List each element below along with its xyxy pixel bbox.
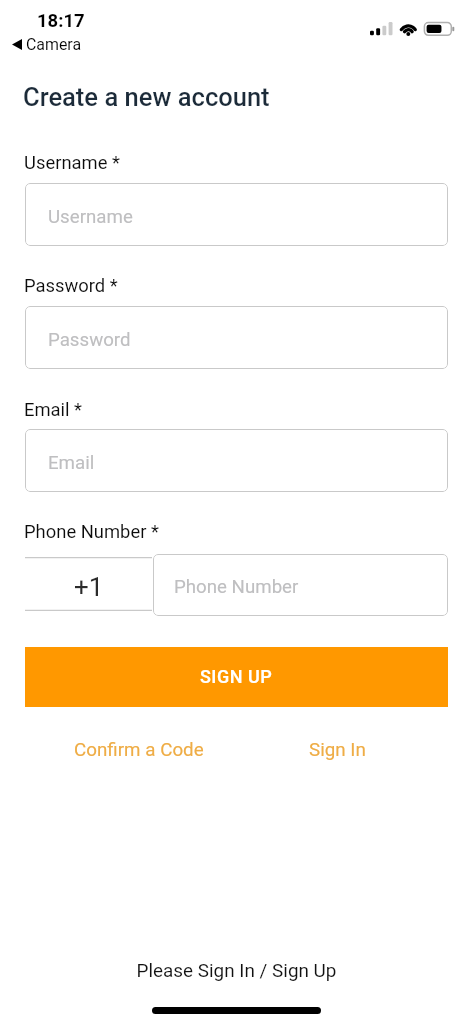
button[interactable]: Confirm a Code (56, 736, 222, 764)
other: Wi-Fi (398, 21, 419, 36)
other: Battery (423, 21, 457, 38)
button[interactable]: Email (25, 429, 448, 492)
staticText: Username (48, 206, 133, 228)
staticText: Phone Number (174, 576, 299, 598)
staticText: Email (48, 452, 95, 474)
staticText: Email * (24, 399, 83, 421)
staticText: +1 (74, 572, 104, 602)
button[interactable]: Sign In (280, 736, 394, 764)
button[interactable]: Back to Camera (12, 39, 22, 50)
staticText: Username * (24, 152, 120, 174)
other: Cellular signal (370, 21, 393, 36)
staticText: Please Sign In / Sign Up (0, 959, 473, 981)
staticText: Phone Number * (24, 521, 159, 543)
staticText: Password * (24, 275, 118, 297)
staticText: Create a new account (23, 82, 270, 112)
button[interactable]: SIGN UP (25, 647, 448, 707)
staticText: SIGN UP (200, 666, 273, 687)
button[interactable]: Username (25, 183, 448, 246)
staticText: Confirm a Code (74, 739, 204, 761)
staticText: Sign In (309, 739, 366, 761)
button[interactable]: Phone Number (153, 554, 448, 616)
staticText: Password (48, 329, 131, 351)
button[interactable]: Camera (26, 35, 82, 54)
staticText: 18:17 (37, 10, 85, 32)
button[interactable]: Password (25, 306, 448, 369)
button[interactable]: +1 (25, 557, 152, 611)
